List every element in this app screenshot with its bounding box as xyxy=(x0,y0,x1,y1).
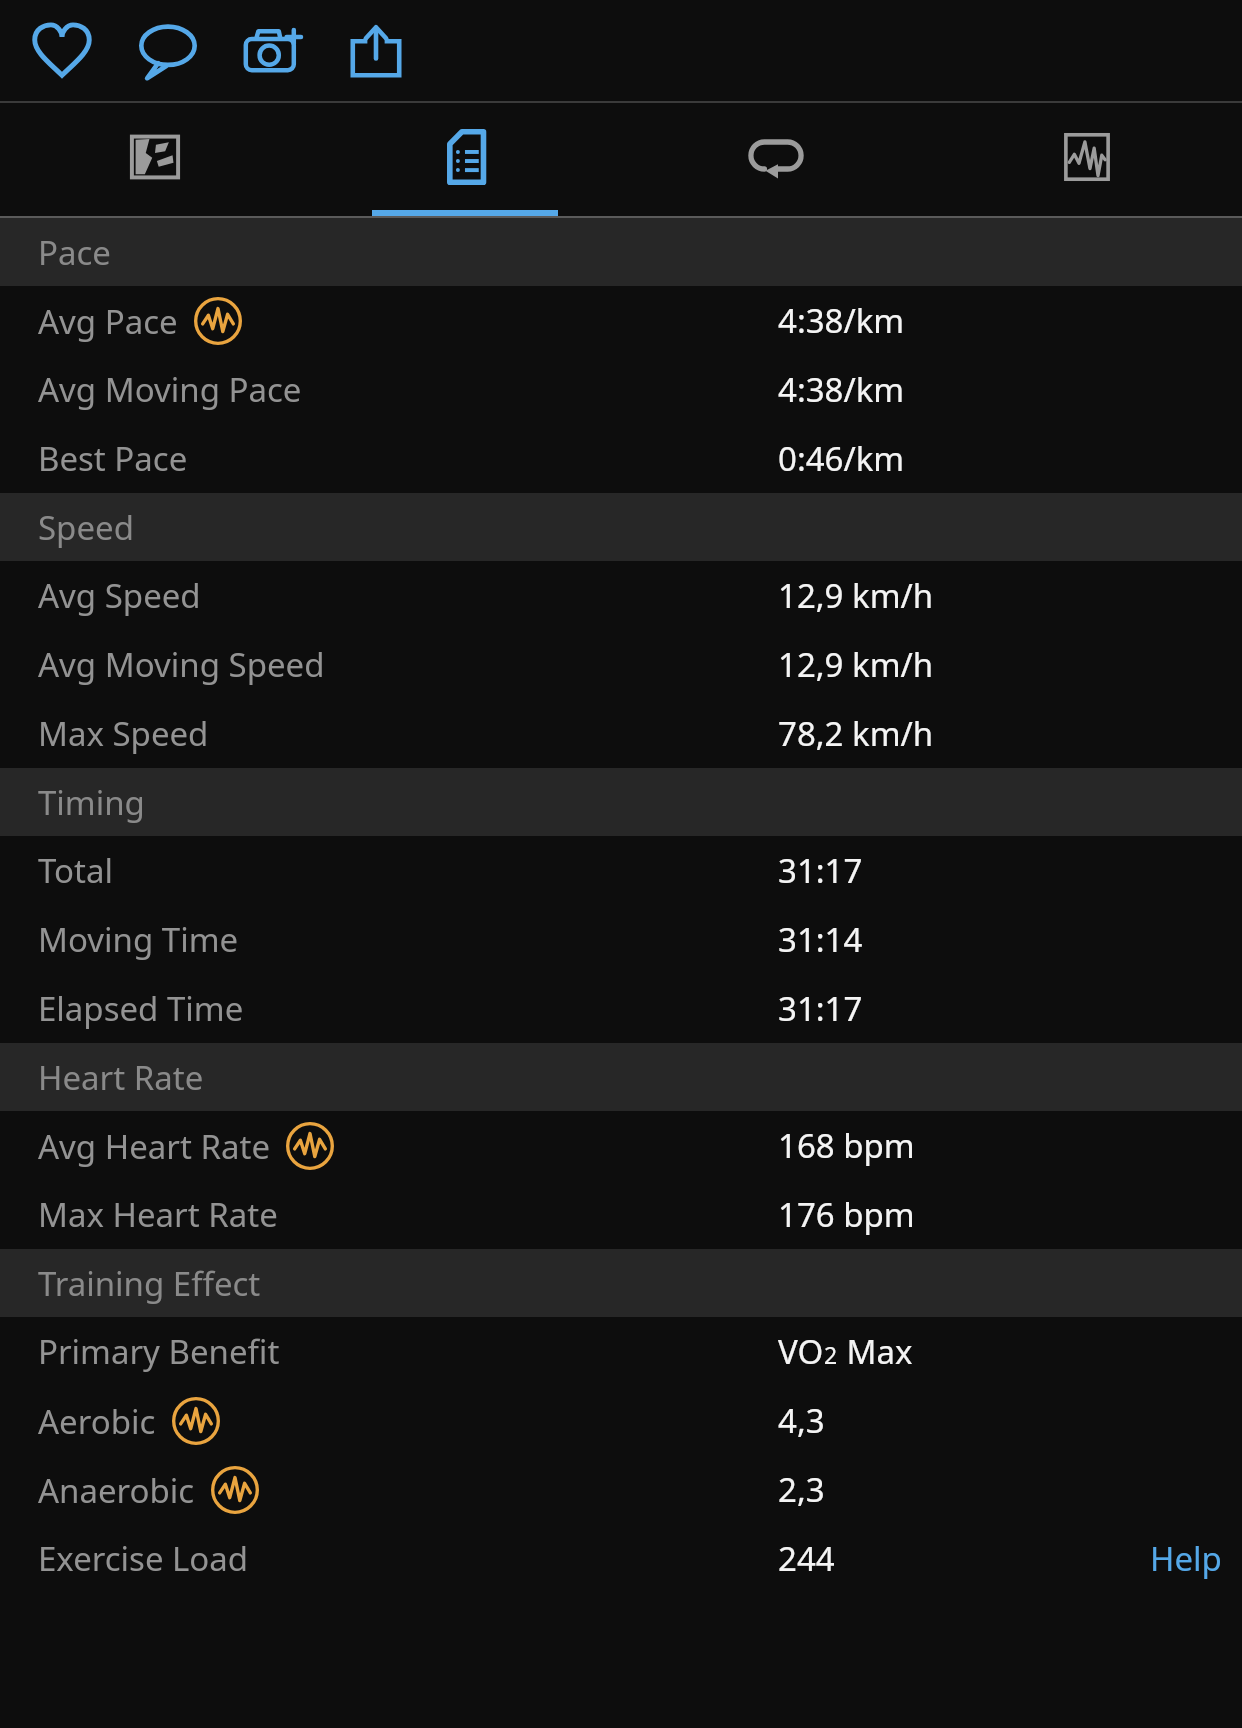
button[interactable]: Exercise Load xyxy=(0,1524,1242,1593)
button[interactable]: Avg Moving Speed xyxy=(0,630,1242,699)
staticText: Avg Moving Pace xyxy=(38,367,302,412)
staticText: 2,3 xyxy=(778,1467,825,1512)
button[interactable]: Add photo xyxy=(236,13,312,89)
button[interactable]: Best Pace xyxy=(0,424,1242,493)
staticText: Max xyxy=(838,1329,913,1374)
staticText: Avg Speed xyxy=(38,573,201,618)
staticText: 12,9 km/h xyxy=(778,573,934,618)
staticText: 4:38/km xyxy=(778,367,905,412)
button[interactable]: Aerobic xyxy=(0,1386,1242,1455)
staticText: 31:17 xyxy=(778,986,863,1031)
staticText: Avg Moving Speed xyxy=(38,642,325,687)
staticText: Best Pace xyxy=(38,436,188,481)
button[interactable]: Avg Pace xyxy=(0,286,1242,355)
button[interactable]: Charts xyxy=(931,103,1242,216)
button[interactable]: Map xyxy=(0,103,310,216)
staticText: Help xyxy=(1150,1536,1222,1581)
button[interactable]: Help xyxy=(1150,1536,1242,1581)
staticText: Speed xyxy=(38,505,134,550)
staticText: Heart Rate xyxy=(38,1055,204,1100)
staticText: Anaerobic xyxy=(38,1468,195,1513)
button[interactable]: Avg Speed xyxy=(0,561,1242,630)
staticText: Max Speed xyxy=(38,711,209,756)
staticText: Max Heart Rate xyxy=(38,1192,278,1237)
button[interactable]: Like xyxy=(24,13,100,89)
staticText: 4:38/km xyxy=(778,298,905,343)
button[interactable]: Avg Heart Rate xyxy=(0,1111,1242,1180)
staticText: 2 xyxy=(824,1339,838,1370)
staticText: Elapsed Time xyxy=(38,986,244,1031)
staticText: Timing xyxy=(38,780,145,825)
staticText: Training Effect xyxy=(38,1261,261,1306)
staticText: Primary Benefit xyxy=(38,1329,280,1374)
staticText: 176 bpm xyxy=(778,1192,915,1237)
staticText: VO xyxy=(778,1329,824,1374)
button[interactable]: Details xyxy=(310,103,620,216)
staticText: 168 bpm xyxy=(778,1123,915,1168)
staticText: Exercise Load xyxy=(38,1536,249,1581)
staticText: Total xyxy=(38,848,113,893)
button[interactable]: Anaerobic xyxy=(0,1455,1242,1524)
button[interactable]: Moving Time xyxy=(0,905,1242,974)
staticText: Pace xyxy=(38,230,111,275)
button[interactable]: Avg Moving Pace xyxy=(0,355,1242,424)
staticText: Aerobic xyxy=(38,1399,156,1444)
button[interactable]: Total xyxy=(0,836,1242,905)
staticText: 31:17 xyxy=(778,848,863,893)
staticText: 0:46/km xyxy=(778,436,905,481)
button[interactable]: Comment xyxy=(130,13,206,89)
staticText: 4,3 xyxy=(778,1398,825,1443)
staticText: Avg Pace xyxy=(38,299,178,344)
button[interactable]: Share xyxy=(338,13,414,89)
button[interactable]: Primary Benefit xyxy=(0,1317,1242,1386)
staticText: 78,2 km/h xyxy=(778,711,934,756)
staticText: Moving Time xyxy=(38,917,239,962)
staticText: 31:14 xyxy=(778,917,863,962)
staticText: 244 xyxy=(778,1536,835,1581)
button[interactable]: Elapsed Time xyxy=(0,974,1242,1043)
button[interactable]: Max Heart Rate xyxy=(0,1180,1242,1249)
button[interactable]: Max Speed xyxy=(0,699,1242,768)
staticText: 12,9 km/h xyxy=(778,642,934,687)
staticText: Avg Heart Rate xyxy=(38,1124,270,1169)
button[interactable]: Laps xyxy=(620,103,931,216)
